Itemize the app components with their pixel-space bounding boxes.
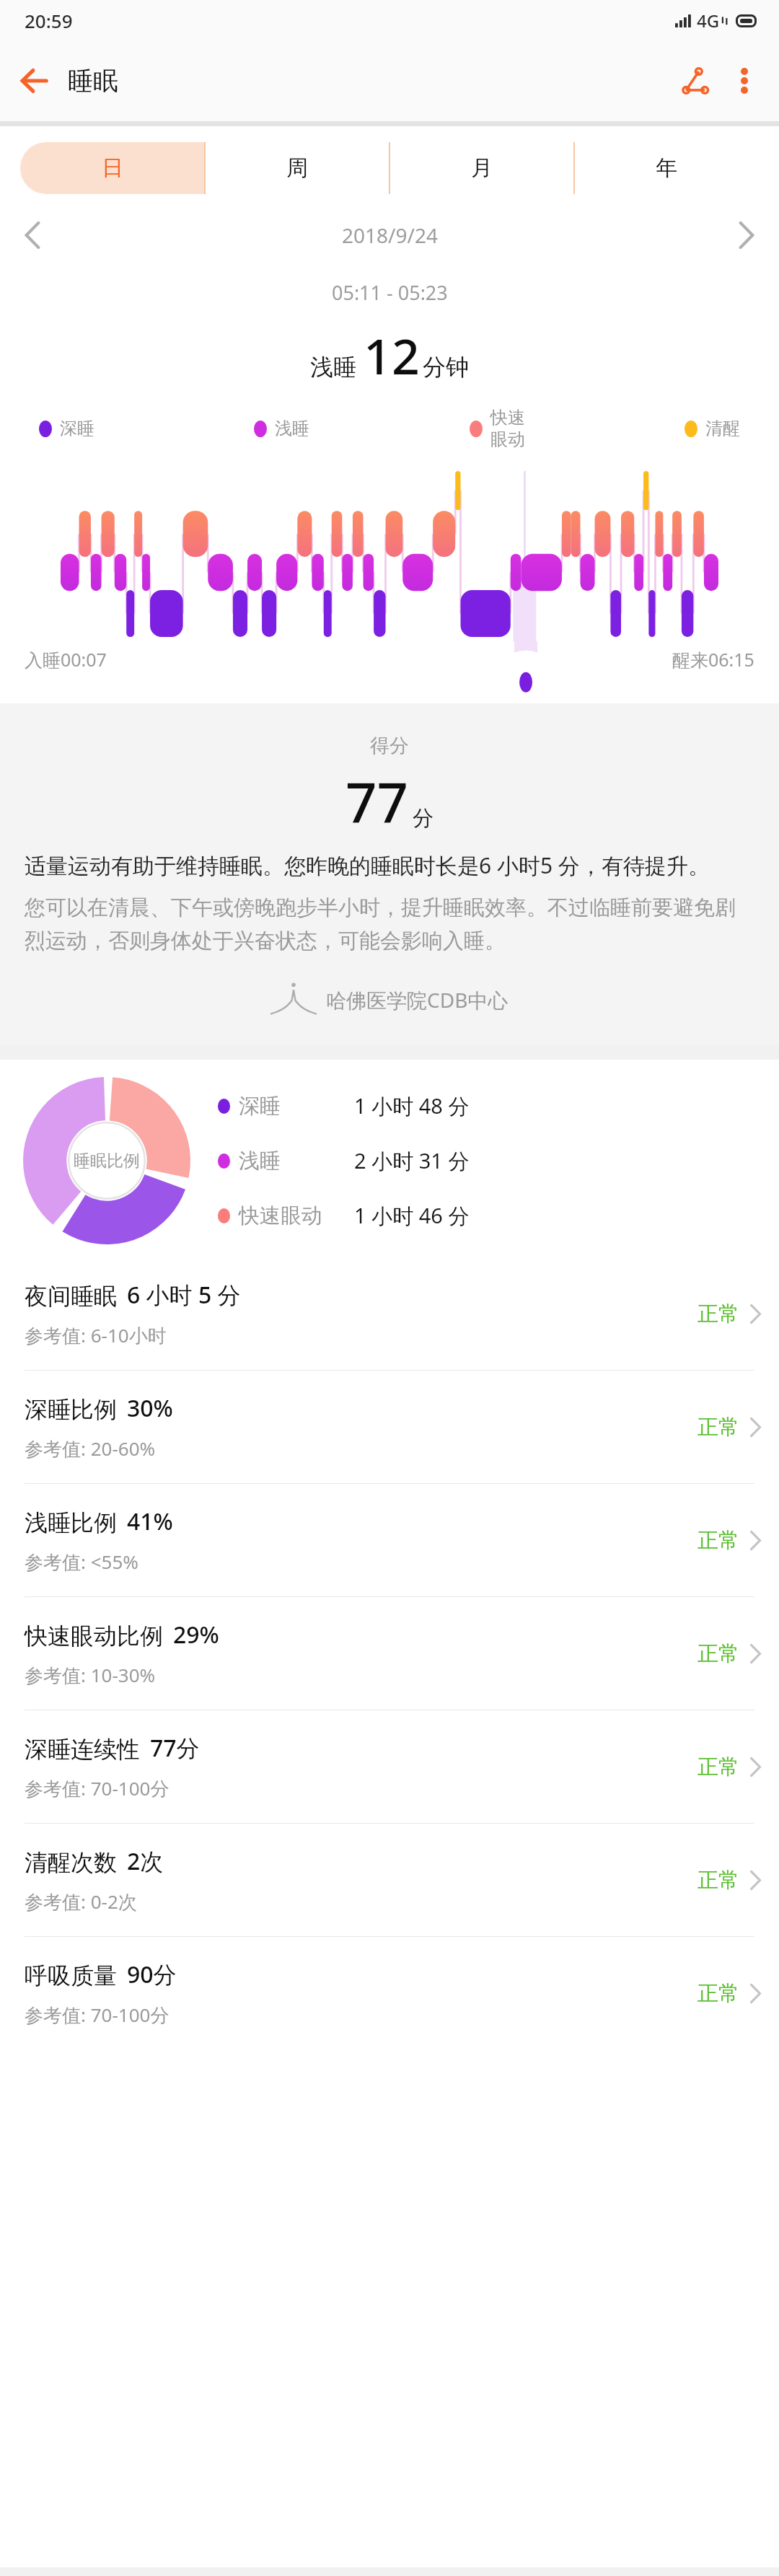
staticText: 快速眼动 xyxy=(239,1203,354,1229)
staticText: 77分 xyxy=(150,1732,200,1764)
staticText: 深睡 xyxy=(239,1093,354,1120)
button[interactable]: 夜间睡眠 xyxy=(0,1257,779,1370)
staticText: 正常 xyxy=(697,1414,739,1441)
staticText: 呼吸质量 xyxy=(25,1961,117,1990)
button[interactable]: 年 xyxy=(574,142,759,194)
button[interactable]: 月 xyxy=(389,142,574,194)
button[interactable]: Share xyxy=(671,56,721,106)
staticText: 适量运动有助于维持睡眠。您昨晚的睡眠时长是6 小时5 分，有待提升。 xyxy=(25,850,754,880)
staticText: 得分 xyxy=(370,734,409,758)
staticText: 90分 xyxy=(127,1959,177,1990)
staticText: 年 xyxy=(656,154,677,182)
staticText: 参考值: 70-100分 xyxy=(25,2002,170,2028)
button[interactable]: More options xyxy=(721,58,767,104)
staticText: 浅睡 xyxy=(239,1148,354,1174)
staticText: 正常 xyxy=(697,1640,739,1667)
staticText: 浅睡比例 xyxy=(25,1508,117,1537)
button[interactable]: Back xyxy=(12,58,58,104)
staticText: 参考值: 10-30% xyxy=(25,1662,156,1688)
staticText: 月 xyxy=(471,154,493,182)
staticText: 参考值: <55% xyxy=(25,1549,138,1575)
staticText: 正常 xyxy=(697,1754,739,1780)
staticText: 睡眠比例 xyxy=(74,1151,140,1171)
button[interactable]: 呼吸质量 xyxy=(0,1937,779,2049)
button[interactable]: 日 xyxy=(20,142,205,194)
staticText: 12 xyxy=(364,322,420,389)
staticText: 快速 xyxy=(490,407,525,428)
button[interactable]: 快速眼动比例 xyxy=(0,1597,779,1710)
staticText: 您可以在清晨、下午或傍晚跑步半小时，提升睡眠效率。不过临睡前要避免剧烈运动，否则… xyxy=(25,894,754,954)
staticText: 20:59 xyxy=(25,8,73,33)
staticText: 正常 xyxy=(697,1301,739,1327)
staticText: 醒来06:15 xyxy=(672,647,754,672)
staticText: 深睡 xyxy=(60,418,94,439)
staticText: 4G xyxy=(697,9,720,32)
button[interactable]: 周 xyxy=(205,142,389,194)
staticText: 哈佛医学院CDB中心 xyxy=(326,986,509,1014)
staticText: 入睡00:07 xyxy=(25,647,107,672)
button[interactable]: Next day xyxy=(723,211,770,259)
staticText: 睡眠 xyxy=(68,65,118,97)
staticText: 分 xyxy=(413,805,433,832)
button[interactable]: 深睡比例 xyxy=(0,1371,779,1483)
staticText: 30% xyxy=(127,1392,173,1424)
staticText: 夜间睡眠 xyxy=(25,1282,117,1311)
staticText: 2次 xyxy=(127,1845,164,1877)
staticText: 29% xyxy=(173,1619,219,1650)
staticText: 浅睡 xyxy=(310,353,356,382)
staticText: 正常 xyxy=(697,1980,739,2007)
staticText: 参考值: 20-60% xyxy=(25,1436,156,1461)
staticText: 2 小时 31 分 xyxy=(354,1146,470,1175)
staticText: 清醒 xyxy=(705,418,740,439)
staticText: 快速眼动比例 xyxy=(25,1622,163,1650)
staticText: 浅睡 xyxy=(275,418,309,439)
staticText: 6 小时 5 分 xyxy=(127,1279,241,1311)
staticText: 分钟 xyxy=(423,353,469,382)
button[interactable]: 深睡连续性 xyxy=(0,1710,779,1823)
staticText: 05:11 - 05:23 xyxy=(332,279,448,306)
button[interactable]: 浅睡比例 xyxy=(0,1484,779,1596)
staticText: 参考值: 0-2次 xyxy=(25,1889,137,1915)
staticText: 日 xyxy=(102,154,123,182)
staticText: 清醒次数 xyxy=(25,1848,117,1877)
staticText: 正常 xyxy=(697,1527,739,1554)
staticText: 参考值: 70-100分 xyxy=(25,1775,170,1801)
staticText: 1 小时 46 分 xyxy=(354,1201,470,1230)
button[interactable]: Previous day xyxy=(9,211,56,259)
staticText: 深睡连续性 xyxy=(25,1735,140,1764)
staticText: 正常 xyxy=(697,1867,739,1894)
staticText: 参考值: 6-10小时 xyxy=(25,1322,167,1348)
staticText: 2018/9/24 xyxy=(342,221,438,249)
staticText: 周 xyxy=(286,154,308,182)
staticText: 77 xyxy=(346,764,408,839)
staticText: 41% xyxy=(127,1505,173,1537)
staticText: 1 小时 48 分 xyxy=(354,1091,470,1120)
button[interactable]: 清醒次数 xyxy=(0,1824,779,1936)
staticText: 眼动 xyxy=(490,428,525,450)
staticText: 深睡比例 xyxy=(25,1395,117,1424)
